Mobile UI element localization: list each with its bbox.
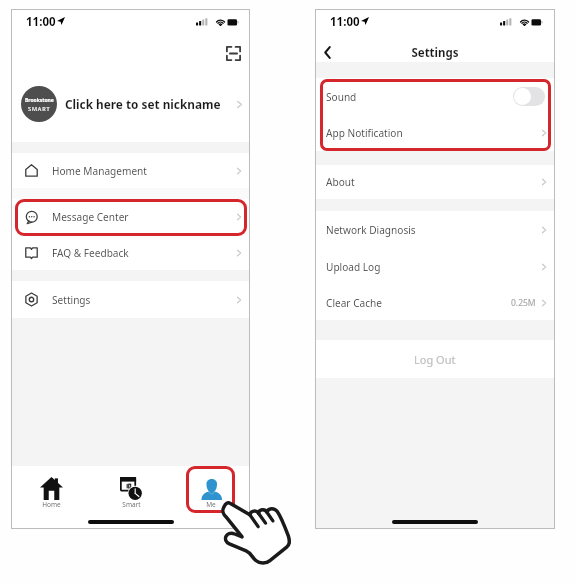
staticText: 0.25M [511, 297, 536, 309]
staticText: App Notification [326, 126, 403, 140]
staticText: Clear Cache [326, 296, 382, 310]
staticText: Network Diagnosis [326, 223, 416, 237]
staticText: 11:00 [26, 14, 56, 30]
button[interactable]: Network Diagnosis [315, 211, 555, 248]
staticText: 11:00 [330, 14, 360, 30]
staticText: Upload Log [326, 260, 381, 274]
staticText: About [326, 175, 355, 189]
staticText: Sound [326, 90, 357, 104]
button[interactable]: Home Management [11, 153, 250, 188]
staticText: Me [206, 500, 216, 509]
button[interactable]: Clear Cache [315, 285, 555, 320]
staticText: Click here to set nickname [65, 96, 221, 112]
staticText: SMART [28, 105, 51, 112]
staticText: Home [42, 500, 61, 509]
button[interactable]: Home [21, 466, 81, 514]
button[interactable]: Smart [101, 466, 161, 514]
button[interactable]: Me [181, 466, 241, 514]
button[interactable]: FAQ & Feedback [11, 235, 250, 270]
button[interactable]: Sound toggle, off [513, 87, 545, 106]
button[interactable]: Sound [315, 78, 555, 115]
button[interactable]: Scan QR code [221, 41, 245, 65]
button[interactable]: Settings [11, 281, 250, 318]
staticText: Settings [52, 293, 91, 307]
button[interactable]: Back [316, 41, 338, 63]
button[interactable]: Brookstone [11, 75, 250, 133]
staticText: Settings [315, 45, 555, 61]
button[interactable]: Upload Log [315, 248, 555, 285]
button[interactable]: Log Out [315, 340, 555, 378]
staticText: FAQ & Feedback [52, 246, 129, 260]
staticText: Home Management [52, 164, 147, 178]
staticText: Smart [122, 500, 141, 509]
button[interactable]: Message Center [11, 199, 250, 235]
staticText: Log Out [414, 352, 456, 367]
staticText: Brookstone [25, 97, 54, 104]
staticText: Message Center [52, 210, 129, 224]
button[interactable]: App Notification [315, 115, 555, 151]
button[interactable]: About [315, 165, 555, 199]
